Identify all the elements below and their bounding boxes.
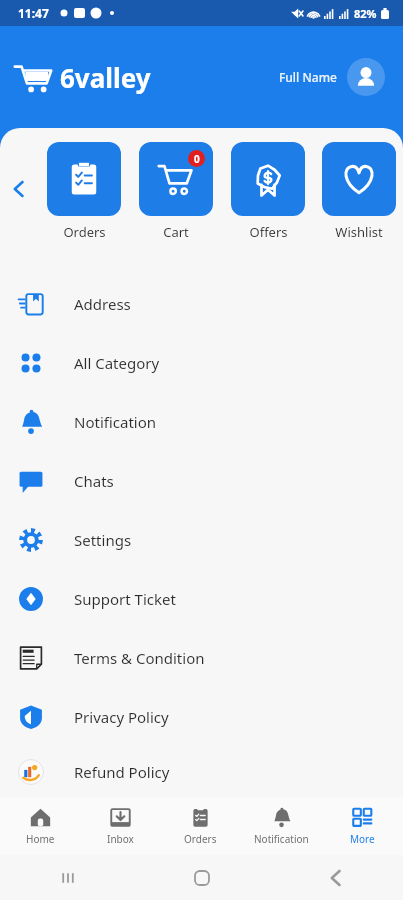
button[interactable]: Chats — [0, 451, 403, 510]
staticText: Privacy Policy — [74, 707, 169, 727]
staticText: 11:47 — [18, 5, 49, 21]
button[interactable]: 0 — [130, 142, 222, 241]
staticText: Orders — [184, 832, 217, 846]
button[interactable]: Home — [0, 797, 80, 855]
staticText: Offers — [249, 223, 288, 241]
staticText: Chats — [74, 471, 114, 491]
staticText: Terms & Condition — [74, 648, 205, 668]
button[interactable]: Notification — [0, 392, 403, 451]
button[interactable]: Support Ticket — [0, 569, 403, 628]
button[interactable]: Full Name — [275, 54, 389, 100]
staticText: 0 — [194, 152, 200, 166]
button[interactable]: Settings — [0, 510, 403, 569]
button[interactable]: Wishlist — [314, 142, 403, 241]
button[interactable]: Inbox — [80, 797, 160, 855]
staticText: 82% — [354, 6, 377, 21]
staticText: More — [350, 832, 375, 846]
staticText: Wishlist — [335, 223, 383, 241]
button[interactable]: Refund Policy — [0, 746, 403, 797]
button[interactable]: Privacy Policy — [0, 687, 403, 746]
button[interactable]: All Category — [0, 333, 403, 392]
staticText: Cart — [163, 223, 189, 241]
staticText: 6valley — [60, 60, 151, 95]
button[interactable]: Next — [373, 176, 399, 202]
staticText: Support Ticket — [74, 589, 176, 609]
button[interactable]: Previous — [6, 176, 32, 202]
staticText: Notification — [74, 412, 157, 432]
staticText: Settings — [74, 530, 132, 550]
staticText: Refund Policy — [74, 762, 170, 782]
staticText: Home — [26, 832, 55, 846]
staticText: Orders — [63, 223, 106, 241]
button[interactable]: Address — [0, 274, 403, 333]
staticText: All Category — [74, 353, 160, 373]
button[interactable]: Notification — [241, 797, 322, 855]
button[interactable]: Orders — [160, 797, 241, 855]
button[interactable]: More — [322, 797, 403, 855]
staticText: Notification — [254, 832, 309, 846]
staticText: Inbox — [107, 832, 134, 846]
staticText: Full Name — [279, 69, 337, 85]
staticText: Address — [74, 294, 131, 314]
button[interactable]: Orders — [38, 142, 130, 241]
button[interactable]: Offers — [222, 142, 314, 241]
button[interactable]: Terms & Condition — [0, 628, 403, 687]
